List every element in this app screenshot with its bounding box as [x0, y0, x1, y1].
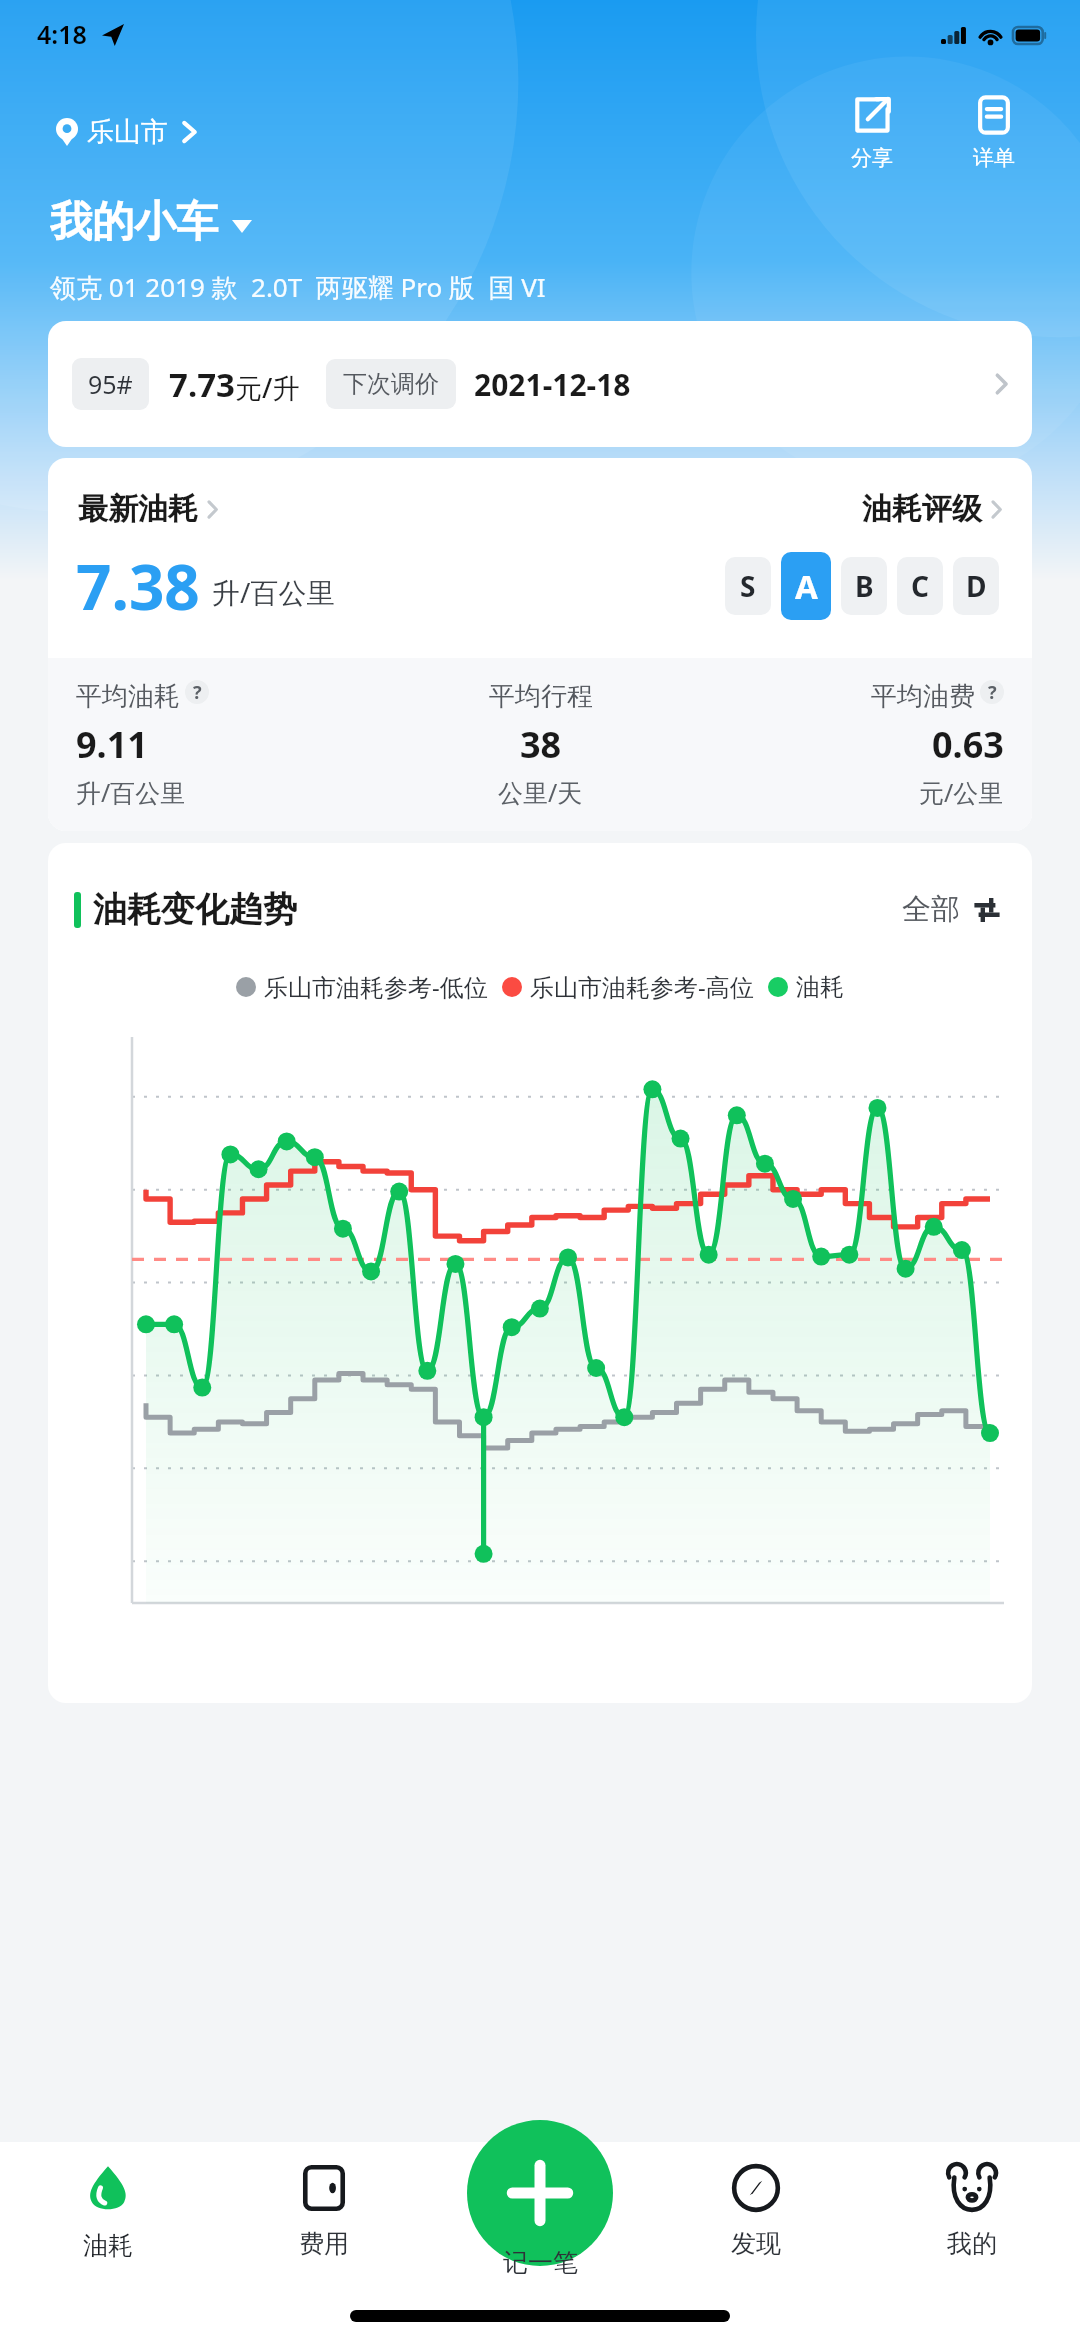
staticText: 分享 [851, 145, 893, 171]
button[interactable]: B [841, 557, 887, 615]
staticText: 公里/天 [498, 775, 583, 809]
staticText: 油耗评级 [862, 490, 982, 528]
button[interactable]: 平均油耗 [76, 680, 386, 809]
staticText: 升/百公里 [212, 573, 335, 611]
button[interactable]: 95# [48, 321, 1032, 447]
staticText: 95# [88, 367, 133, 401]
button[interactable]: 最新油耗 [76, 488, 220, 530]
staticText: ? [988, 680, 997, 704]
button[interactable]: 分享 [824, 91, 920, 174]
button[interactable]: 油耗评级 [860, 488, 1004, 530]
staticText: 升/百公里 [76, 775, 186, 809]
staticText: 油耗变化趋势 [93, 888, 297, 931]
button[interactable]: 全部 [898, 887, 1006, 932]
staticText: 7.38 [76, 544, 200, 628]
staticText: 元/升 [235, 369, 300, 406]
button[interactable]: S [725, 557, 771, 615]
button[interactable]: 发现 [648, 2156, 864, 2265]
staticText: 领克 01 2019 款 2.0T 两驱耀 Pro 版 国 VI [50, 269, 546, 305]
staticText: 我的 [947, 2228, 997, 2259]
staticText: 最新油耗 [78, 490, 198, 528]
staticText: 我的小车 [50, 196, 218, 249]
staticText: 详单 [973, 145, 1015, 171]
button[interactable]: 油耗 [0, 2156, 216, 2267]
button[interactable]: D [953, 557, 999, 615]
staticText: S [740, 567, 756, 605]
staticText: 7.73 [169, 362, 235, 407]
staticText: 乐山市油耗参考-高位 [530, 970, 754, 1003]
button[interactable]: 详单 [946, 91, 1042, 174]
button[interactable]: 记一笔 Add record [467, 2120, 613, 2266]
button[interactable]: 乐山市 [52, 111, 201, 153]
staticText: 元/公里 [919, 775, 1004, 809]
staticText: 发现 [731, 2228, 781, 2259]
button[interactable]: 费用 [216, 2156, 432, 2265]
staticText: 全部 [902, 891, 960, 928]
button[interactable]: 我的 [864, 2156, 1080, 2265]
staticText: 下次调价 [343, 369, 439, 399]
staticText: 平均油耗 [76, 680, 180, 713]
button[interactable]: A [781, 552, 831, 620]
staticText: B [855, 567, 874, 605]
button[interactable]: 平均油费 [695, 680, 1004, 809]
staticText: 0.63 [932, 720, 1004, 769]
staticText: C [911, 567, 929, 605]
staticText: 油耗 [83, 2230, 133, 2261]
staticText: 平均行程 [489, 680, 593, 713]
staticText: 38 [520, 720, 562, 769]
staticText: 费用 [299, 2228, 349, 2259]
button[interactable]: 我的小车 [50, 196, 262, 249]
button[interactable]: 平均行程 [386, 680, 695, 809]
staticText: 平均油费 [871, 680, 975, 713]
staticText: ? [193, 680, 202, 704]
staticText: 乐山市油耗参考-低位 [264, 970, 488, 1003]
staticText: 2021-12-18 [474, 364, 631, 405]
button[interactable]: C [897, 557, 943, 615]
staticText: A [795, 564, 818, 609]
staticText: 油耗 [796, 972, 844, 1002]
staticText: 记一笔 [503, 2247, 578, 2278]
staticText: 9.11 [76, 720, 148, 769]
staticText: D [966, 567, 987, 605]
staticText: 乐山市 [87, 115, 168, 149]
staticText: 4:18 [37, 17, 87, 51]
